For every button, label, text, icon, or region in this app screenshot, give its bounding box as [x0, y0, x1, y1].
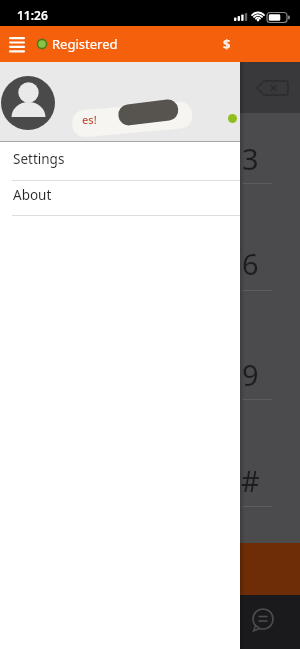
- staticText: es!: [82, 112, 97, 127]
- staticText: Registered: [52, 35, 118, 53]
- button[interactable]: [249, 606, 277, 634]
- button[interactable]: es!: [0, 62, 240, 141]
- staticText: 6: [242, 244, 259, 283]
- button[interactable]: 3: [240, 138, 260, 178]
- button[interactable]: Settings: [0, 140, 240, 178]
- staticText: About: [13, 186, 52, 204]
- staticText: 3: [242, 139, 259, 178]
- staticText: 9: [242, 355, 259, 394]
- button[interactable]: 6: [240, 243, 260, 283]
- staticText: 11:26: [17, 7, 48, 23]
- button[interactable]: About: [0, 179, 240, 211]
- staticText: Settings: [13, 150, 65, 168]
- button[interactable]: 9: [240, 354, 260, 394]
- staticText: $: [223, 35, 231, 53]
- button[interactable]: [2, 26, 34, 62]
- staticText: #: [241, 461, 260, 500]
- button[interactable]: $: [213, 26, 241, 62]
- button[interactable]: #: [240, 460, 260, 500]
